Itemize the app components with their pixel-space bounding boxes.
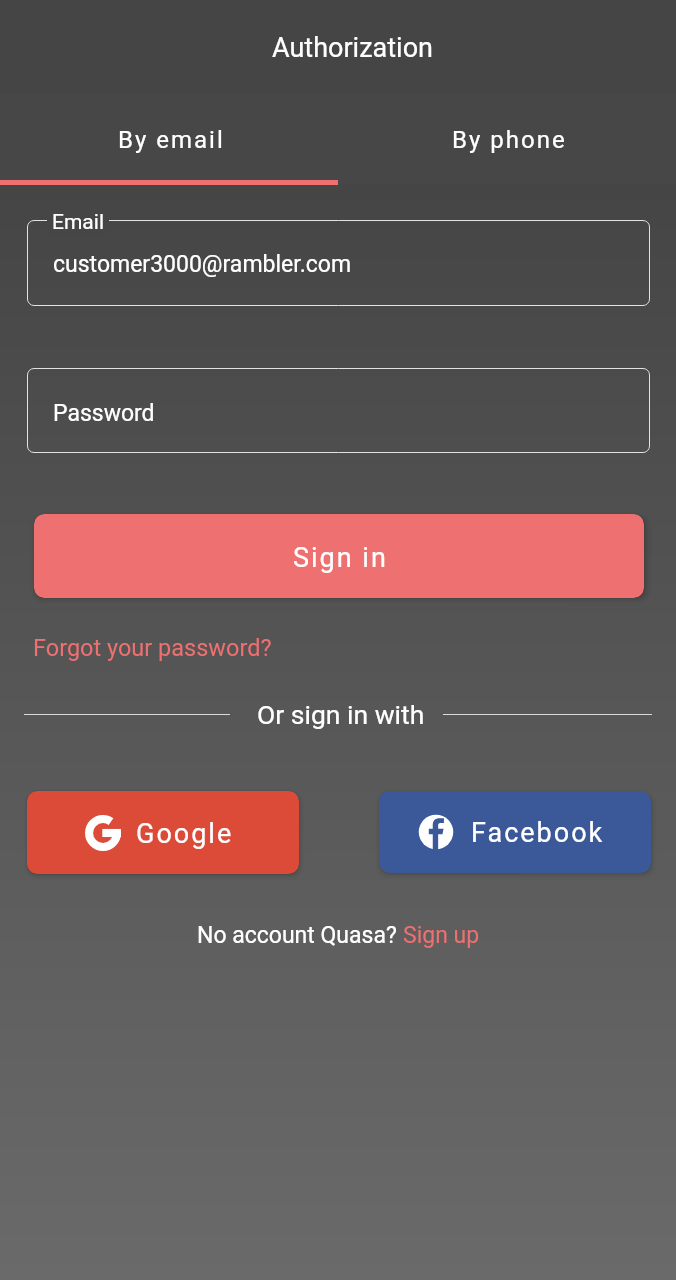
button[interactable]: By phone: [338, 95, 676, 184]
other: Google: [85, 815, 121, 851]
staticText: customer3000@rambler.com: [53, 251, 352, 278]
staticText: No account Quasa?: [197, 922, 403, 949]
button[interactable]: Sign in: [34, 514, 644, 598]
staticText: Authorization: [272, 32, 433, 64]
button[interactable]: Forgot your password?: [33, 634, 272, 662]
staticText: Email: [52, 210, 104, 235]
button[interactable]: Sign up: [403, 922, 480, 949]
button[interactable]: By email: [0, 95, 338, 184]
staticText: Password: [53, 400, 155, 427]
staticText: Or sign in with: [257, 699, 425, 730]
button[interactable]: Facebook: [379, 791, 651, 873]
other: Facebook: [418, 814, 454, 850]
staticText: By phone: [452, 126, 567, 154]
staticText: By email: [118, 126, 225, 154]
staticText: Google: [136, 818, 234, 850]
staticText: Forgot your password?: [33, 634, 272, 662]
staticText: Sign up: [403, 922, 480, 949]
staticText: Facebook: [471, 817, 605, 849]
staticText: Sign in: [293, 542, 388, 574]
button[interactable]: Google: [27, 791, 299, 874]
